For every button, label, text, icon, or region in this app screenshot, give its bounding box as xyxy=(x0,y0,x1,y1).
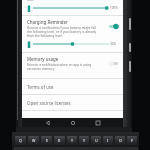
staticText: the following level, or if your battery … xyxy=(27,30,105,34)
staticText: I xyxy=(107,138,109,143)
button[interactable]: E xyxy=(41,136,52,145)
button[interactable]: Toggle off xyxy=(108,60,119,67)
staticText: T xyxy=(71,138,73,143)
button[interactable]: Power xyxy=(129,61,131,72)
button[interactable]: Recent apps xyxy=(91,118,105,128)
staticText: level xyxy=(27,0,34,2)
staticText: Memory usage xyxy=(27,56,59,62)
button[interactable]: O xyxy=(115,136,125,145)
button[interactable]: T xyxy=(67,136,77,145)
staticText: 100% xyxy=(110,6,118,10)
button[interactable]: Volume up xyxy=(129,18,131,30)
staticText: R xyxy=(58,138,61,143)
button[interactable]: Back xyxy=(41,118,55,128)
staticText: W xyxy=(32,138,36,143)
button[interactable]: Q xyxy=(15,136,26,145)
staticText: Charging Reminder xyxy=(27,19,68,25)
button[interactable]: P xyxy=(127,136,137,145)
staticText: Y xyxy=(83,138,86,143)
staticText: E xyxy=(46,138,48,143)
button[interactable]: 100% xyxy=(27,4,118,12)
staticText: than the following level xyxy=(27,34,62,38)
button[interactable]: Open source licenses xyxy=(22,95,123,110)
staticText: U xyxy=(95,138,98,143)
button[interactable]: W xyxy=(28,136,39,145)
staticText: 30% xyxy=(110,42,118,46)
staticText: Receive a notification if your battery m… xyxy=(27,26,105,30)
button[interactable]: Home xyxy=(66,118,80,128)
button[interactable]: 30% xyxy=(27,40,118,48)
button[interactable]: Charging Reminder xyxy=(22,16,123,40)
button[interactable]: Terms of use xyxy=(22,79,123,94)
staticText: O xyxy=(119,138,122,143)
button[interactable]: Y xyxy=(79,136,89,145)
button[interactable]: Volume down xyxy=(129,43,131,52)
button[interactable]: Memory usage xyxy=(22,53,123,73)
button[interactable]: U xyxy=(91,136,101,145)
staticText: Terms of use xyxy=(27,84,54,90)
staticText: P xyxy=(131,138,134,143)
button[interactable]: Toggle on xyxy=(108,23,119,30)
button[interactable]: I xyxy=(103,136,113,145)
staticText: excessive memory xyxy=(27,67,55,71)
staticText: Q xyxy=(19,138,22,143)
staticText: Open source licenses xyxy=(27,100,71,106)
button[interactable]: R xyxy=(54,136,65,145)
staticText: Receive a notification when an app is us… xyxy=(27,63,92,67)
